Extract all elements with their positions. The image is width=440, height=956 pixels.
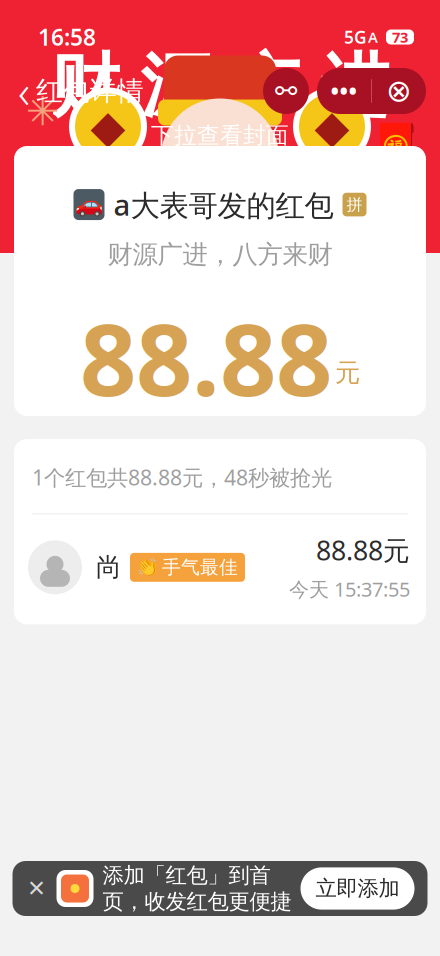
staticText: 财源广进，八方来财 (107, 239, 332, 270)
staticText: 73 (392, 27, 408, 47)
staticText: 手气最佳 (162, 556, 238, 579)
button[interactable]: ‹ (0, 57, 144, 125)
staticText: 领取成功，已存入余额 (94, 446, 334, 475)
staticText: 👏 (137, 557, 159, 577)
staticText: ⚯ (275, 76, 297, 106)
button[interactable]: 立即添加 (300, 867, 414, 910)
staticText: 🧧 (368, 122, 424, 173)
staticText: 尚 (96, 552, 121, 583)
staticText: ✳ (26, 89, 60, 134)
staticText: ✦ (355, 79, 382, 130)
button[interactable]: Close (16, 868, 56, 908)
staticText: 拼 (346, 195, 362, 214)
staticText: 财 源 广 进 (50, 44, 389, 129)
staticText: 元 (335, 357, 360, 388)
staticText: a大表哥发的红包 (113, 185, 333, 224)
button[interactable]: 查看红包记录 (141, 872, 299, 910)
staticText: ✕ (27, 876, 46, 901)
staticText: 立即添加 (315, 875, 399, 902)
staticText: ••• (330, 76, 357, 106)
staticText: 下拉查看封面 (151, 122, 289, 149)
staticText: 🚗 (75, 192, 103, 217)
staticText: ⊗ (386, 74, 412, 108)
button[interactable]: Mini program (263, 68, 309, 114)
button[interactable]: 领取成功，已存入余额 (86, 437, 353, 484)
staticText: 添加「红包」到首页，收发红包更便捷 (102, 862, 291, 915)
staticText: 今天 15:37:55 (289, 576, 410, 602)
staticText: ◆ (90, 101, 125, 152)
staticText: 查看红包记录 (151, 877, 289, 905)
staticText: ◆ (314, 101, 349, 152)
staticText: 1个红包共88.88元，48秒被抢光 (32, 463, 332, 491)
button[interactable]: More and close (317, 68, 426, 114)
staticText: 16:58 (38, 22, 96, 52)
staticText: 5G (344, 25, 367, 48)
staticText: 88.88 (80, 292, 332, 423)
staticText: 红包详情 (36, 75, 144, 107)
staticText: 88.88元 (316, 532, 410, 568)
staticText: ‹ (18, 61, 30, 121)
staticText: A (368, 27, 378, 47)
